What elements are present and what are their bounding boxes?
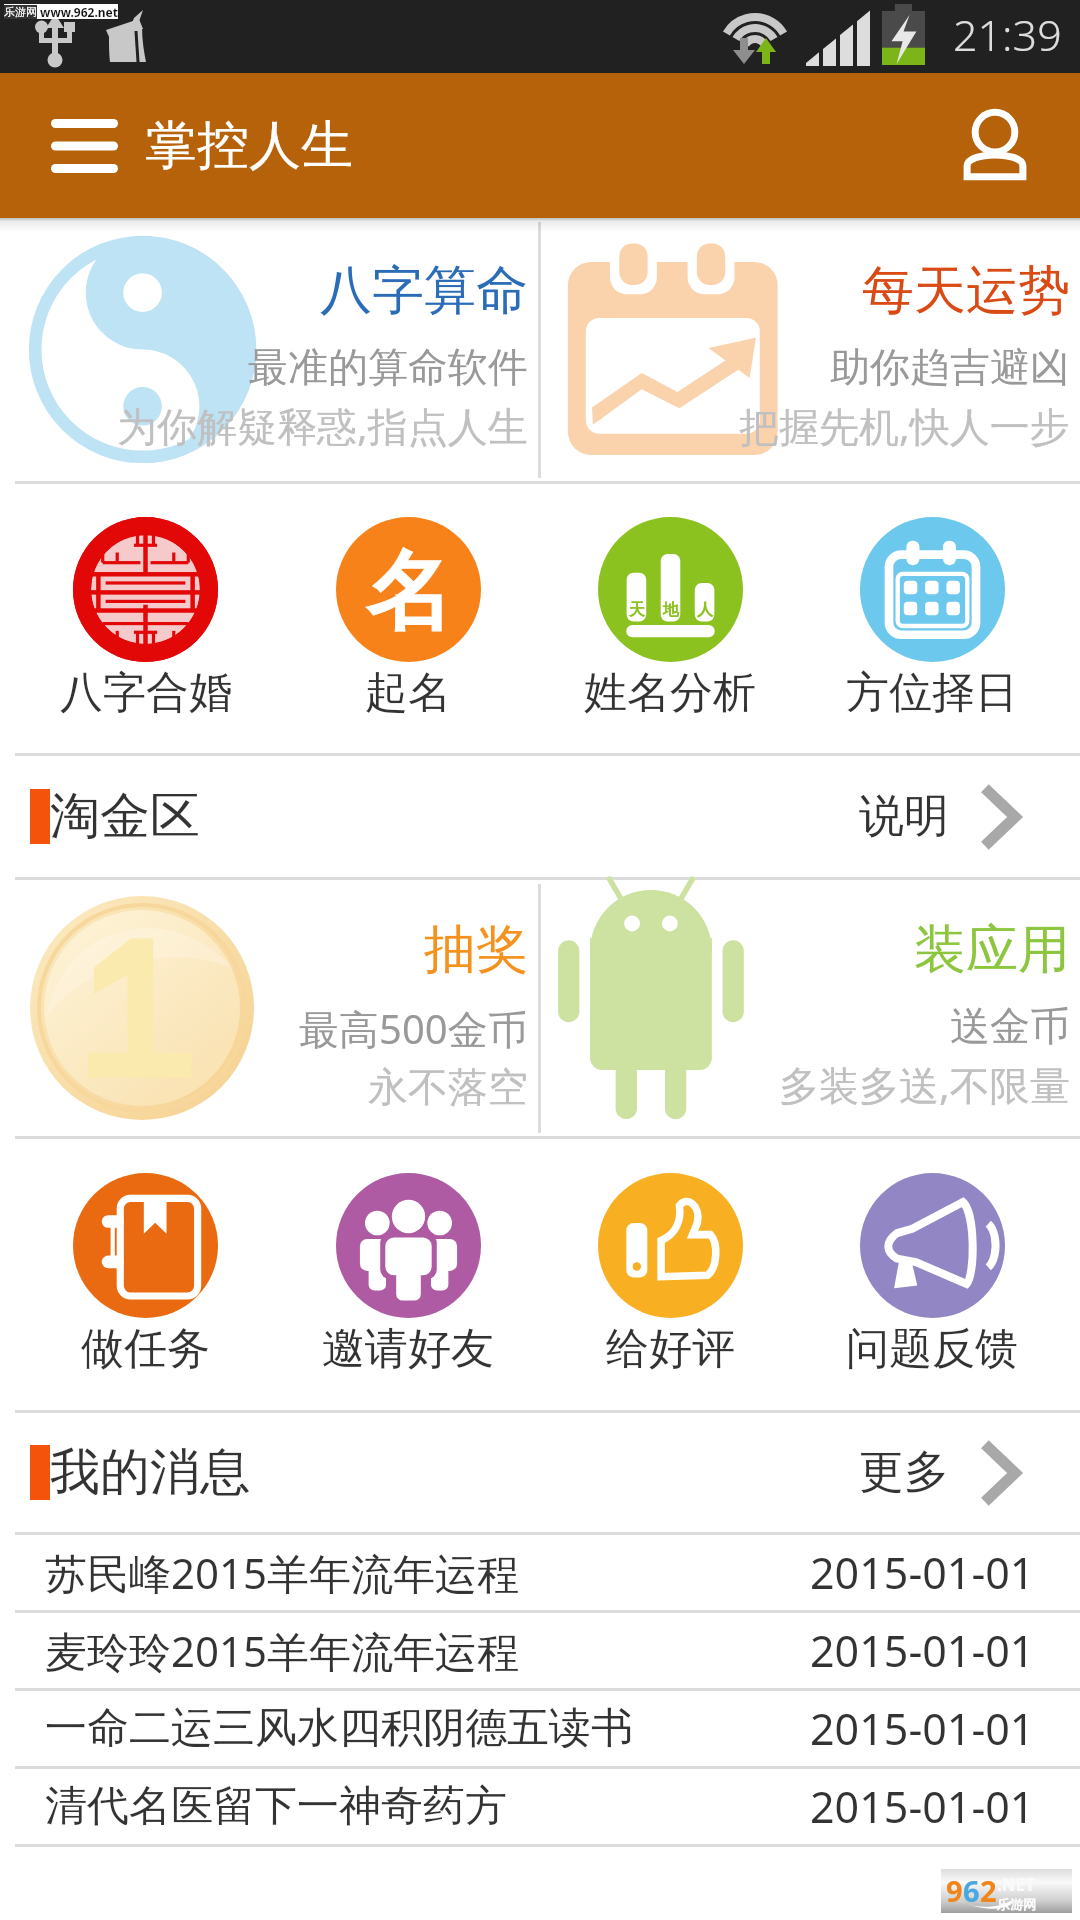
staticText: 装应用	[914, 917, 1070, 983]
staticText: 起名	[365, 666, 451, 720]
staticText: 人	[697, 600, 713, 620]
staticText: 2	[980, 1871, 997, 1910]
button[interactable]: 名	[277, 484, 539, 753]
button[interactable]: 给好评	[539, 1139, 801, 1410]
button[interactable]: Profile	[947, 98, 1043, 194]
staticText: .NET	[997, 1873, 1035, 1896]
staticText: 2015-01-01	[810, 1543, 1035, 1602]
staticText: 淘金区	[50, 785, 200, 848]
staticText: 6	[963, 1871, 980, 1910]
staticText: 更多	[859, 1444, 949, 1501]
staticText: 送金币	[950, 1001, 1070, 1051]
staticText: 姓名分析	[584, 666, 756, 720]
staticText: 八字合婚	[60, 666, 232, 720]
staticText: 麦玲玲2015羊年流年运程	[45, 1622, 520, 1679]
staticText: 清代名医留下一神奇药方	[45, 1780, 507, 1833]
button[interactable]: 苏民峰2015羊年流年运程	[0, 1535, 1080, 1610]
staticText: 多装多送,不限量	[779, 1057, 1070, 1112]
button[interactable]: Open navigation menu	[51, 110, 131, 182]
button[interactable]: 八字算命	[0, 218, 538, 481]
staticText: 天	[629, 600, 645, 620]
staticText: 一命二运三风水四积阴德五读书	[45, 1702, 633, 1755]
staticText: 21:39	[953, 5, 1062, 64]
staticText: 做任务	[81, 1322, 210, 1376]
staticText: 为你解疑释惑,指点人生	[117, 398, 528, 453]
staticText: 最准的算命软件	[248, 342, 528, 392]
staticText: 八字算命	[320, 258, 528, 324]
button[interactable]: 我的消息	[0, 1413, 1080, 1532]
button[interactable]: 抽奖	[0, 880, 538, 1136]
staticText: 助你趋吉避凶	[830, 342, 1070, 392]
staticText: 2015-01-01	[810, 1699, 1035, 1758]
button[interactable]: 天	[539, 484, 801, 753]
staticText: 方位择日	[846, 666, 1018, 720]
button[interactable]: 麦玲玲2015羊年流年运程	[0, 1613, 1080, 1688]
button[interactable]: 邀请好友	[277, 1139, 539, 1410]
staticText: www.962.net	[37, 4, 118, 19]
staticText: 说明	[859, 788, 949, 845]
staticText: 乐游网	[4, 5, 37, 19]
staticText: 苏民峰2015羊年流年运程	[45, 1544, 520, 1601]
staticText: 把握先机,快人一步	[739, 398, 1070, 453]
staticText: 2015-01-01	[810, 1621, 1035, 1680]
button[interactable]: 方位择日	[801, 484, 1063, 753]
staticText: 邀请好友	[322, 1322, 494, 1376]
staticText: 2015-01-01	[810, 1777, 1035, 1836]
button[interactable]: 淘金区	[0, 756, 1080, 877]
staticText: 抽奖	[424, 917, 528, 983]
staticText: 乐游网	[997, 1896, 1036, 1912]
button[interactable]: 装应用	[541, 880, 1080, 1136]
staticText: 掌控人生	[145, 113, 353, 179]
button[interactable]: 每天运势	[541, 218, 1080, 481]
staticText: 永不落空	[368, 1062, 528, 1112]
staticText: 我的消息	[50, 1441, 250, 1504]
staticText: 名	[366, 538, 452, 646]
button[interactable]: 做任务	[14, 1139, 277, 1410]
staticText: 问题反馈	[846, 1322, 1018, 1376]
button[interactable]: 清代名医留下一神奇药方	[0, 1769, 1080, 1844]
staticText: 地	[663, 600, 679, 620]
staticText: 9	[946, 1871, 963, 1910]
staticText: 最高500金币	[299, 1001, 528, 1056]
button[interactable]: 八字合婚	[14, 484, 277, 753]
staticText: 给好评	[606, 1322, 735, 1376]
button[interactable]: 问题反馈	[801, 1139, 1063, 1410]
button[interactable]: 一命二运三风水四积阴德五读书	[0, 1691, 1080, 1766]
staticText: 每天运势	[862, 258, 1070, 324]
